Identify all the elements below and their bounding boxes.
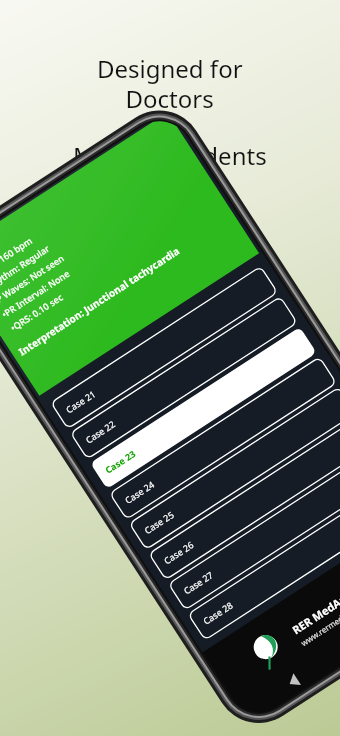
button[interactable]: Designed for Doctors and Medical Student… [0, 0, 340, 736]
